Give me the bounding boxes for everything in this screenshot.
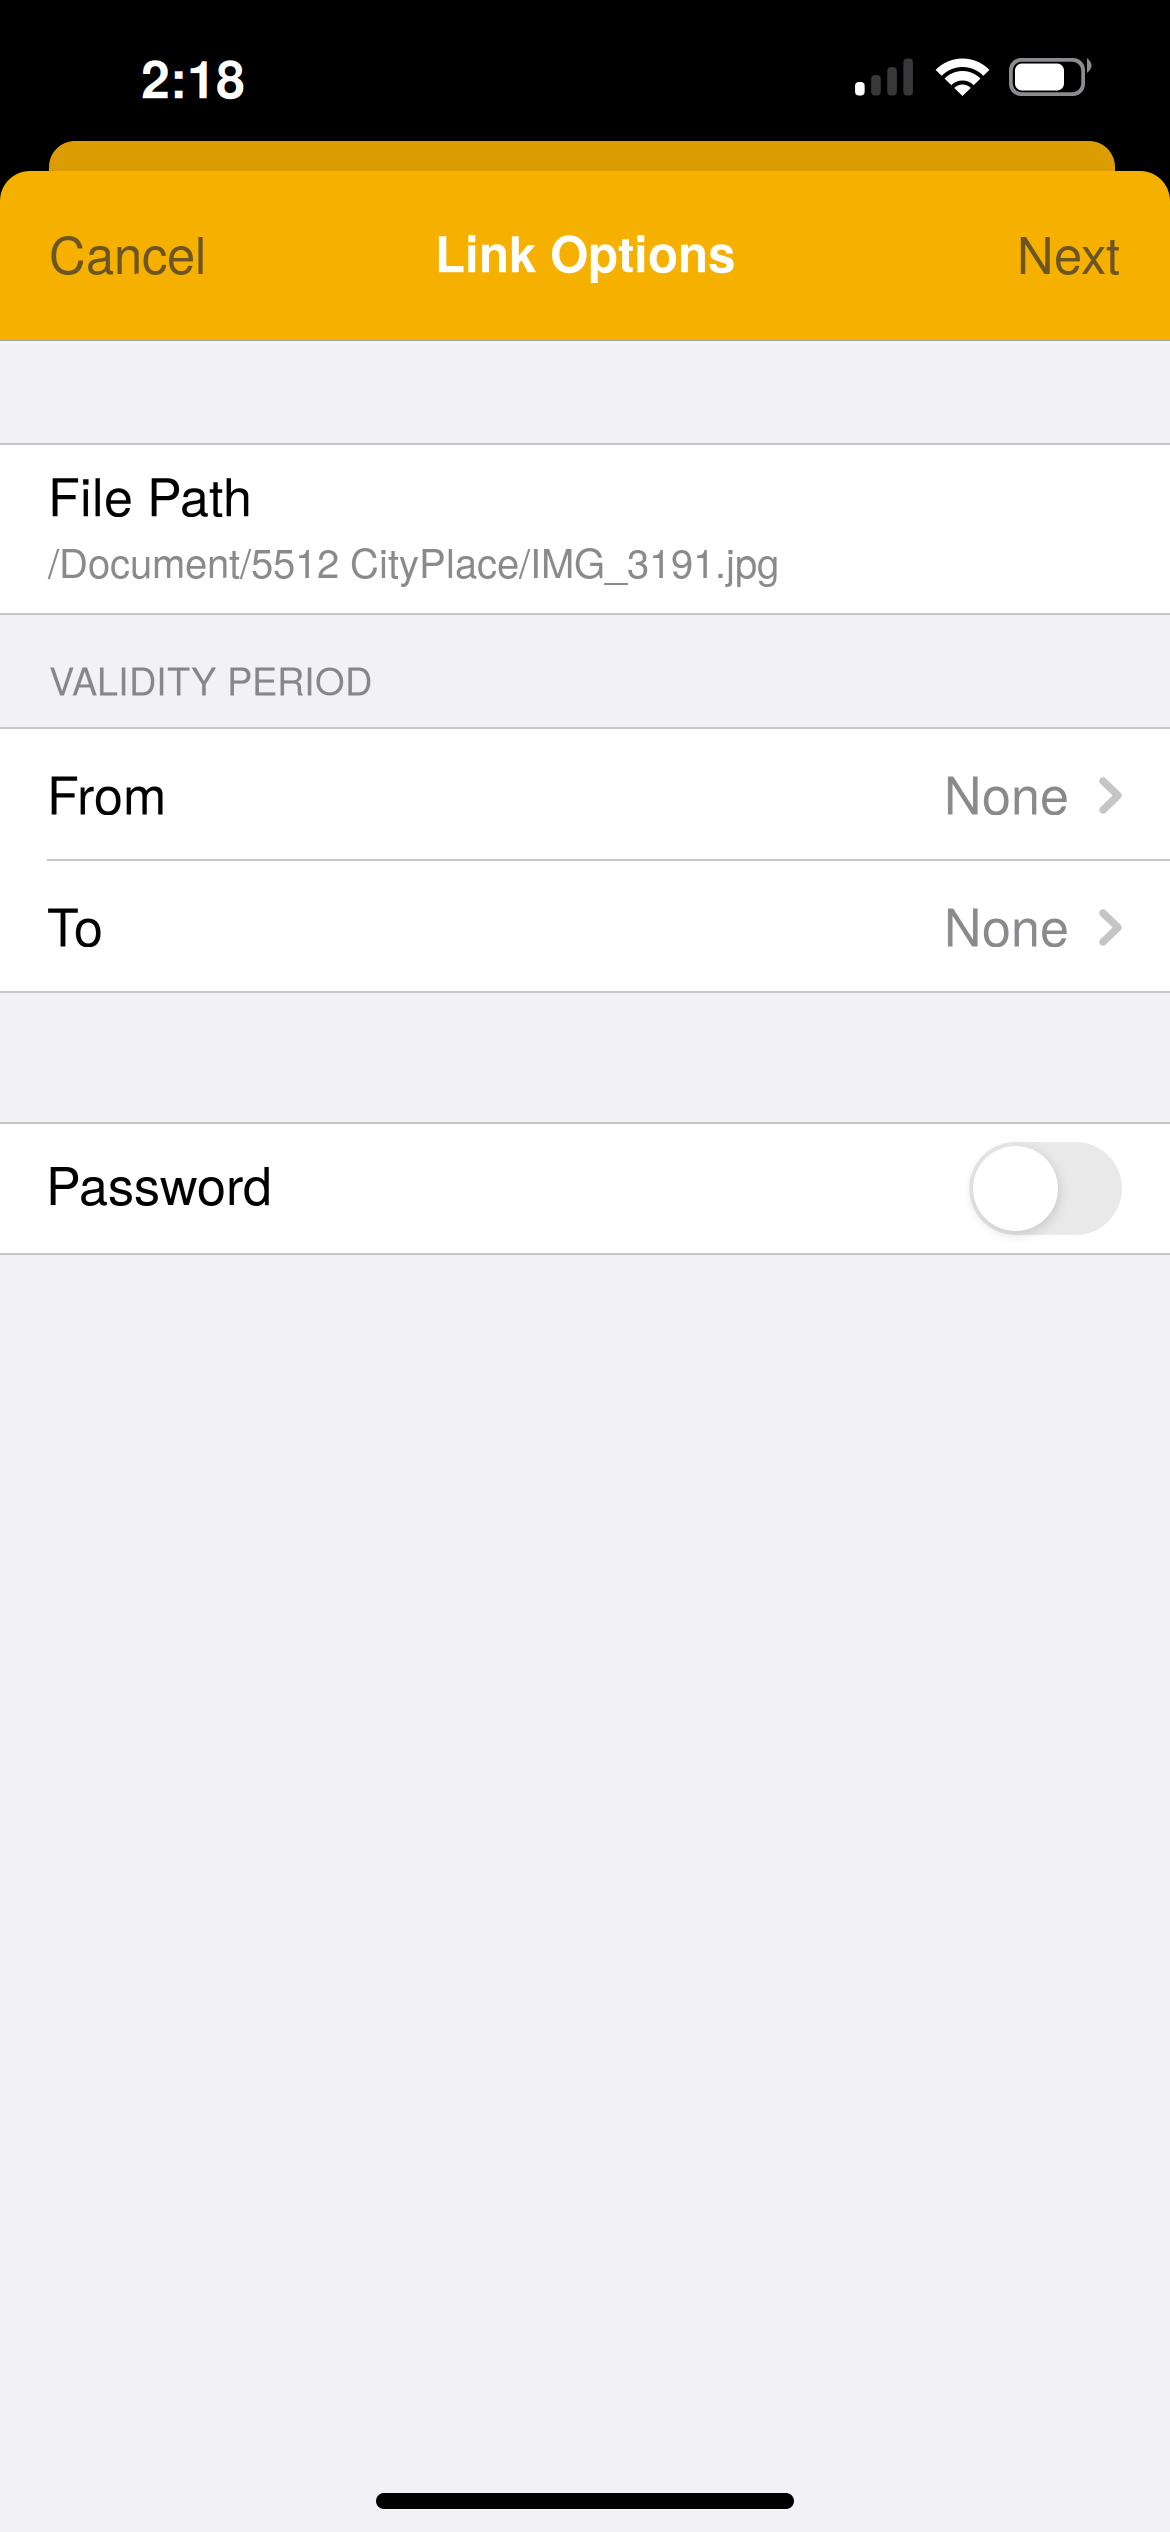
staticText: File Path (48, 457, 252, 531)
staticText: /Document/5512 CityPlace/IMG_3191.jpg (48, 532, 779, 589)
button[interactable]: To (0, 861, 1170, 991)
staticText: VALIDITY PERIOD (49, 652, 372, 706)
button[interactable]: From (0, 729, 1170, 859)
staticText: Password (46, 1145, 272, 1220)
staticText: Cancel (49, 216, 206, 288)
staticText: Link Options (435, 217, 735, 287)
staticText: None (944, 755, 1069, 829)
button[interactable]: Next (977, 186, 1170, 324)
button[interactable]: Cancel (0, 186, 246, 324)
staticText: Next (1017, 216, 1120, 288)
staticText: None (944, 887, 1069, 961)
button[interactable]: Password (0, 1124, 1170, 1253)
staticText: To (47, 887, 103, 961)
staticText: From (47, 755, 166, 829)
staticText: 2:18 (141, 40, 245, 114)
